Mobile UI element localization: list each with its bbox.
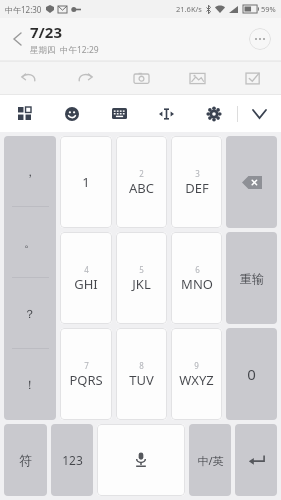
- staticText: 。: [24, 235, 36, 250]
- button[interactable]: 3: [171, 136, 222, 228]
- staticText: 123: [62, 452, 83, 468]
- staticText: MNO: [181, 275, 213, 293]
- button[interactable]: Backspace: [226, 136, 277, 228]
- button[interactable]: Keyboard layout: [96, 95, 143, 132]
- button[interactable]: Cursor move: [143, 95, 190, 132]
- staticText: 符: [19, 452, 32, 468]
- button[interactable]: Hide keyboard: [238, 95, 281, 132]
- button[interactable]: Redo: [57, 62, 113, 94]
- staticText: 2: [139, 168, 144, 179]
- staticText: 5: [139, 264, 144, 275]
- button[interactable]: Voice input: [97, 424, 185, 496]
- staticText: GHI: [74, 275, 98, 293]
- staticText: 59%: [261, 4, 276, 14]
- button[interactable]: 9: [171, 328, 222, 420]
- staticText: PQRS: [69, 371, 103, 389]
- button[interactable]: 0: [226, 328, 277, 420]
- staticText: DEF: [185, 179, 209, 197]
- button[interactable]: More options: [249, 28, 271, 50]
- button[interactable]: Checklist: [225, 62, 281, 94]
- button[interactable]: Camera: [113, 62, 169, 94]
- button[interactable]: 重输: [226, 232, 277, 324]
- staticText: ，: [24, 164, 36, 179]
- staticText: 21.6K/s: [176, 4, 202, 14]
- button[interactable]: 5: [116, 232, 167, 324]
- staticText: 4: [84, 264, 89, 275]
- button[interactable]: 2: [116, 136, 167, 228]
- button[interactable]: Emoji: [48, 95, 96, 132]
- staticText: ！: [24, 377, 36, 392]
- button[interactable]: 中/英: [189, 424, 231, 496]
- button[interactable]: 8: [116, 328, 167, 420]
- staticText: 7: [84, 360, 89, 371]
- staticText: 中/英: [197, 453, 224, 468]
- staticText: 中午12:30: [5, 4, 42, 15]
- staticText: 8: [139, 360, 144, 371]
- button[interactable]: Enter: [235, 424, 277, 496]
- button[interactable]: 符: [4, 424, 47, 496]
- button[interactable]: Insert image: [169, 62, 225, 94]
- staticText: ABC: [129, 179, 154, 197]
- staticText: 星期四 中午12:29: [30, 44, 99, 56]
- button[interactable]: Keyboard apps: [0, 95, 48, 132]
- staticText: 9: [194, 360, 199, 371]
- button[interactable]: ？: [4, 278, 56, 349]
- button[interactable]: 1: [60, 136, 112, 228]
- staticText: TUV: [129, 371, 154, 389]
- staticText: 3: [195, 168, 200, 179]
- button[interactable]: Settings: [190, 95, 237, 132]
- staticText: 6: [195, 264, 200, 275]
- staticText: WXYZ: [179, 371, 214, 389]
- button[interactable]: 6: [171, 232, 222, 324]
- button[interactable]: ！: [4, 349, 56, 420]
- staticText: 重输: [240, 271, 264, 286]
- staticText: ？: [24, 306, 36, 321]
- staticText: 0: [247, 364, 256, 384]
- button[interactable]: Back: [6, 28, 28, 50]
- button[interactable]: 7: [60, 328, 112, 420]
- button[interactable]: Undo: [0, 62, 57, 94]
- button[interactable]: 123: [51, 424, 93, 496]
- staticText: 7/23: [30, 22, 62, 42]
- button[interactable]: 4: [60, 232, 112, 324]
- staticText: 1: [82, 173, 90, 191]
- staticText: JKL: [132, 275, 151, 293]
- button[interactable]: ，: [4, 136, 56, 207]
